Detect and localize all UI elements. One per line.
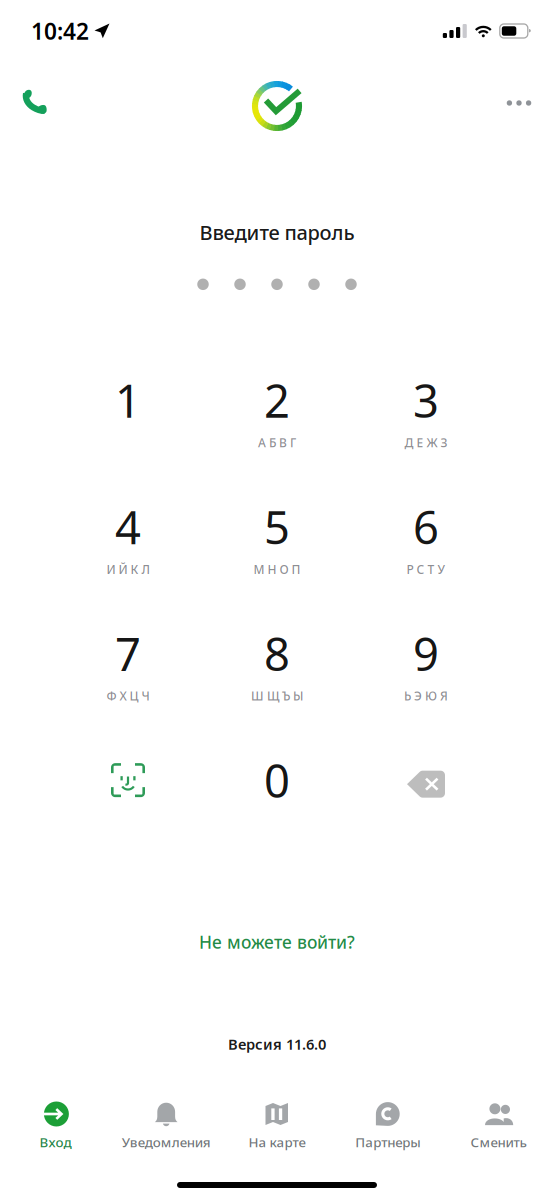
staticText: 10:42 xyxy=(31,16,89,46)
button[interactable]: Позвонить xyxy=(11,83,57,129)
button[interactable]: 2 xyxy=(202,344,351,456)
staticText: На карте xyxy=(248,1133,305,1151)
button[interactable]: Вход xyxy=(0,1091,111,1153)
staticText: И Й К Л xyxy=(106,561,149,577)
button[interactable]: 0 xyxy=(202,724,351,836)
button[interactable]: Уведомления xyxy=(111,1091,222,1153)
button[interactable]: На карте xyxy=(222,1091,332,1153)
button[interactable]: 6 xyxy=(351,471,500,583)
button[interactable]: 3 xyxy=(351,344,500,456)
staticText: Сменить xyxy=(471,1133,527,1151)
staticText: Уведомления xyxy=(122,1133,211,1151)
staticText: Партнеры xyxy=(355,1133,420,1151)
staticText: М Н О П xyxy=(253,561,300,577)
staticText: 1 xyxy=(115,370,141,430)
button[interactable]: 8 xyxy=(202,597,351,709)
staticText: 7 xyxy=(115,623,141,684)
staticText: Версия 11.6.0 xyxy=(228,1034,326,1054)
button[interactable]: Партнеры xyxy=(332,1091,443,1153)
staticText: 6 xyxy=(413,497,439,557)
button[interactable]: 1 xyxy=(53,344,202,456)
staticText: Д Е Ж З xyxy=(404,435,447,450)
staticText: 3 xyxy=(413,370,439,430)
button[interactable]: 9 xyxy=(351,597,500,709)
staticText: Ь Э Ю Я xyxy=(404,688,448,704)
button[interactable]: Удалить xyxy=(351,724,500,836)
button[interactable]: Меню xyxy=(496,83,542,129)
staticText: Ш Щ Ъ Ы xyxy=(251,688,303,704)
staticText: А Б В Г xyxy=(258,435,296,450)
staticText: Ф Х Ц Ч xyxy=(106,688,149,704)
staticText: Не можете войти? xyxy=(199,930,355,953)
button[interactable]: Не можете войти? xyxy=(179,922,375,962)
staticText: 4 xyxy=(115,497,141,557)
button[interactable]: Сменить xyxy=(443,1091,554,1153)
staticText: Вход xyxy=(39,1133,71,1151)
button[interactable]: 5 xyxy=(202,471,351,583)
button[interactable]: 7 xyxy=(53,597,202,709)
button[interactable]: 4 xyxy=(53,471,202,583)
staticText: 5 xyxy=(264,497,290,557)
staticText: 0 xyxy=(264,750,290,810)
staticText: Р С Т У xyxy=(406,561,445,577)
staticText: 8 xyxy=(264,623,290,684)
staticText: 2 xyxy=(264,370,290,430)
staticText: Введите пароль xyxy=(199,219,354,246)
staticText: 9 xyxy=(413,623,439,684)
button[interactable]: Face ID xyxy=(53,724,202,836)
